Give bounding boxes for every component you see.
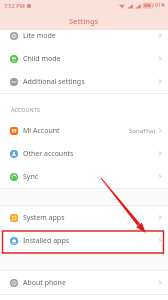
staticText: Other accounts <box>23 149 74 159</box>
staticText: SonaThaj <box>129 127 155 135</box>
staticText: ACCOUNTS <box>11 106 40 113</box>
button[interactable]: Child mode <box>0 47 168 70</box>
staticText: System apps <box>23 213 65 223</box>
staticText: 7:52 PM <box>4 2 25 9</box>
staticText: About phone <box>23 278 66 288</box>
button[interactable]: About phone <box>0 271 168 294</box>
staticText: Child mode <box>23 54 61 64</box>
button[interactable]: Installed apps <box>0 229 168 252</box>
button[interactable]: Other accounts <box>0 142 168 165</box>
staticText: Sync <box>23 172 39 182</box>
button[interactable]: System apps <box>0 206 168 229</box>
staticText: Lite mode <box>23 31 56 41</box>
button[interactable]: Mi Account <box>0 119 168 142</box>
staticText: Installed apps <box>23 236 70 246</box>
button[interactable]: Sync <box>0 165 168 188</box>
staticText: Settings <box>69 16 99 26</box>
staticText: Mi Account <box>23 126 60 136</box>
button[interactable]: Additional settings <box>0 70 168 93</box>
button[interactable]: Lite mode <box>0 24 168 47</box>
staticText: Additional settings <box>23 77 85 87</box>
staticText: 91% <box>155 2 165 9</box>
